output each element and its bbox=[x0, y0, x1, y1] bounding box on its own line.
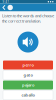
button[interactable]: caballo bbox=[3, 90, 53, 99]
staticText: caballo bbox=[21, 92, 34, 98]
button[interactable]: pajaro bbox=[3, 80, 53, 89]
button[interactable]: gato bbox=[3, 70, 53, 79]
staticText: perro bbox=[22, 62, 33, 68]
button[interactable]: Language bbox=[7, 5, 13, 10]
staticText: pajaro bbox=[22, 82, 34, 88]
button[interactable]: Back bbox=[2, 5, 6, 10]
staticText: gato bbox=[23, 72, 32, 78]
staticText: Listen to the words and choose the corre… bbox=[2, 13, 54, 24]
staticText: 9:41 bbox=[2, 0, 9, 3]
button[interactable]: perro bbox=[3, 60, 53, 69]
button[interactable]: Play audio bbox=[17, 32, 38, 53]
